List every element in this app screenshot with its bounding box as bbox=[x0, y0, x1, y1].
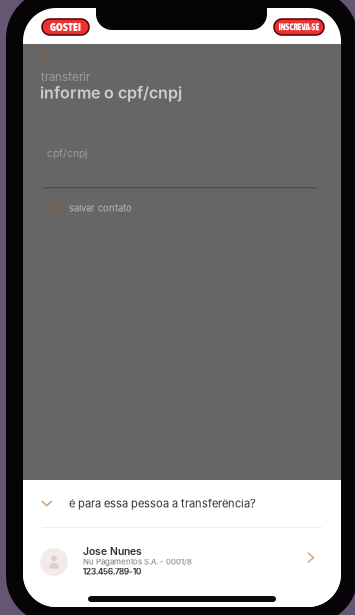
staticText: Jose Nunes bbox=[83, 545, 142, 557]
staticText: GOSTEI bbox=[50, 20, 81, 33]
staticText: Nu Pagamentos S.A. - 0001/8 bbox=[83, 557, 192, 566]
staticText: 123.456.789-10 bbox=[83, 566, 141, 576]
staticText: salvar contato bbox=[69, 202, 132, 214]
staticText: é para essa pessoa a transferência? bbox=[69, 497, 256, 510]
button[interactable]: salvar contato bbox=[50, 201, 170, 215]
button[interactable]: INSCREVA-SE bbox=[274, 19, 324, 35]
staticText: informe o cpf/cnpj bbox=[40, 83, 182, 102]
staticText: cpf/cnpj bbox=[47, 147, 87, 159]
button[interactable]: Jose Nunes bbox=[23, 528, 341, 592]
button[interactable]: GOSTEI bbox=[42, 19, 89, 35]
button[interactable]: é para essa pessoa a transferência? bbox=[23, 480, 341, 527]
button[interactable]: Voltar bbox=[36, 45, 64, 69]
staticText: transferir bbox=[41, 70, 90, 84]
staticText: INSCREVA-SE bbox=[278, 22, 319, 32]
